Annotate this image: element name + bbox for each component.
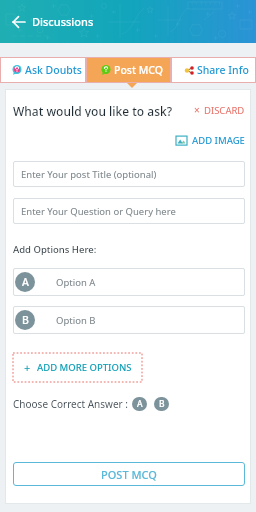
staticText: ADD IMAGE [192,134,245,147]
staticText: Ask Doubts [25,63,82,77]
staticText: Option B [56,314,96,327]
staticText: A [22,275,29,289]
button[interactable]: Share Info [171,57,256,83]
staticText: ADD MORE OPTIONS [37,361,132,374]
staticText: Discussions [32,14,94,29]
staticText: POST MCQ [101,467,157,482]
button[interactable]: × [194,103,245,117]
button[interactable]: Back [7,10,31,34]
button[interactable]: + [13,353,142,382]
button[interactable]: POST MCQ [13,462,245,486]
button[interactable]: B [13,306,245,334]
staticText: DISCARD [204,104,245,117]
staticText: Share Info [197,63,249,77]
staticText: Choose Correct Answer : [13,397,128,411]
staticText: B [159,398,165,410]
button[interactable]: A [13,268,245,296]
staticText: Add Options Here: [13,243,97,256]
staticText: + [24,360,31,375]
staticText: Enter Your Question or Query here [21,205,176,218]
staticText: What would you like to ask? [13,103,173,117]
button[interactable]: Enter Your Question or Query here [13,198,245,224]
staticText: Enter Your post Title (optional) [21,168,157,181]
button[interactable]: Ask Doubts [0,57,86,83]
button[interactable]: B [154,397,169,411]
button[interactable]: A [132,397,147,411]
button[interactable]: ADD IMAGE [176,134,245,147]
staticText: × [194,103,200,117]
button[interactable]: Enter Your post Title (optional) [13,161,245,187]
staticText: A [137,398,143,410]
button[interactable]: Post MCQ [86,57,171,83]
staticText: Post MCQ [114,63,164,77]
staticText: Option A [56,276,96,289]
staticText: B [22,313,29,327]
